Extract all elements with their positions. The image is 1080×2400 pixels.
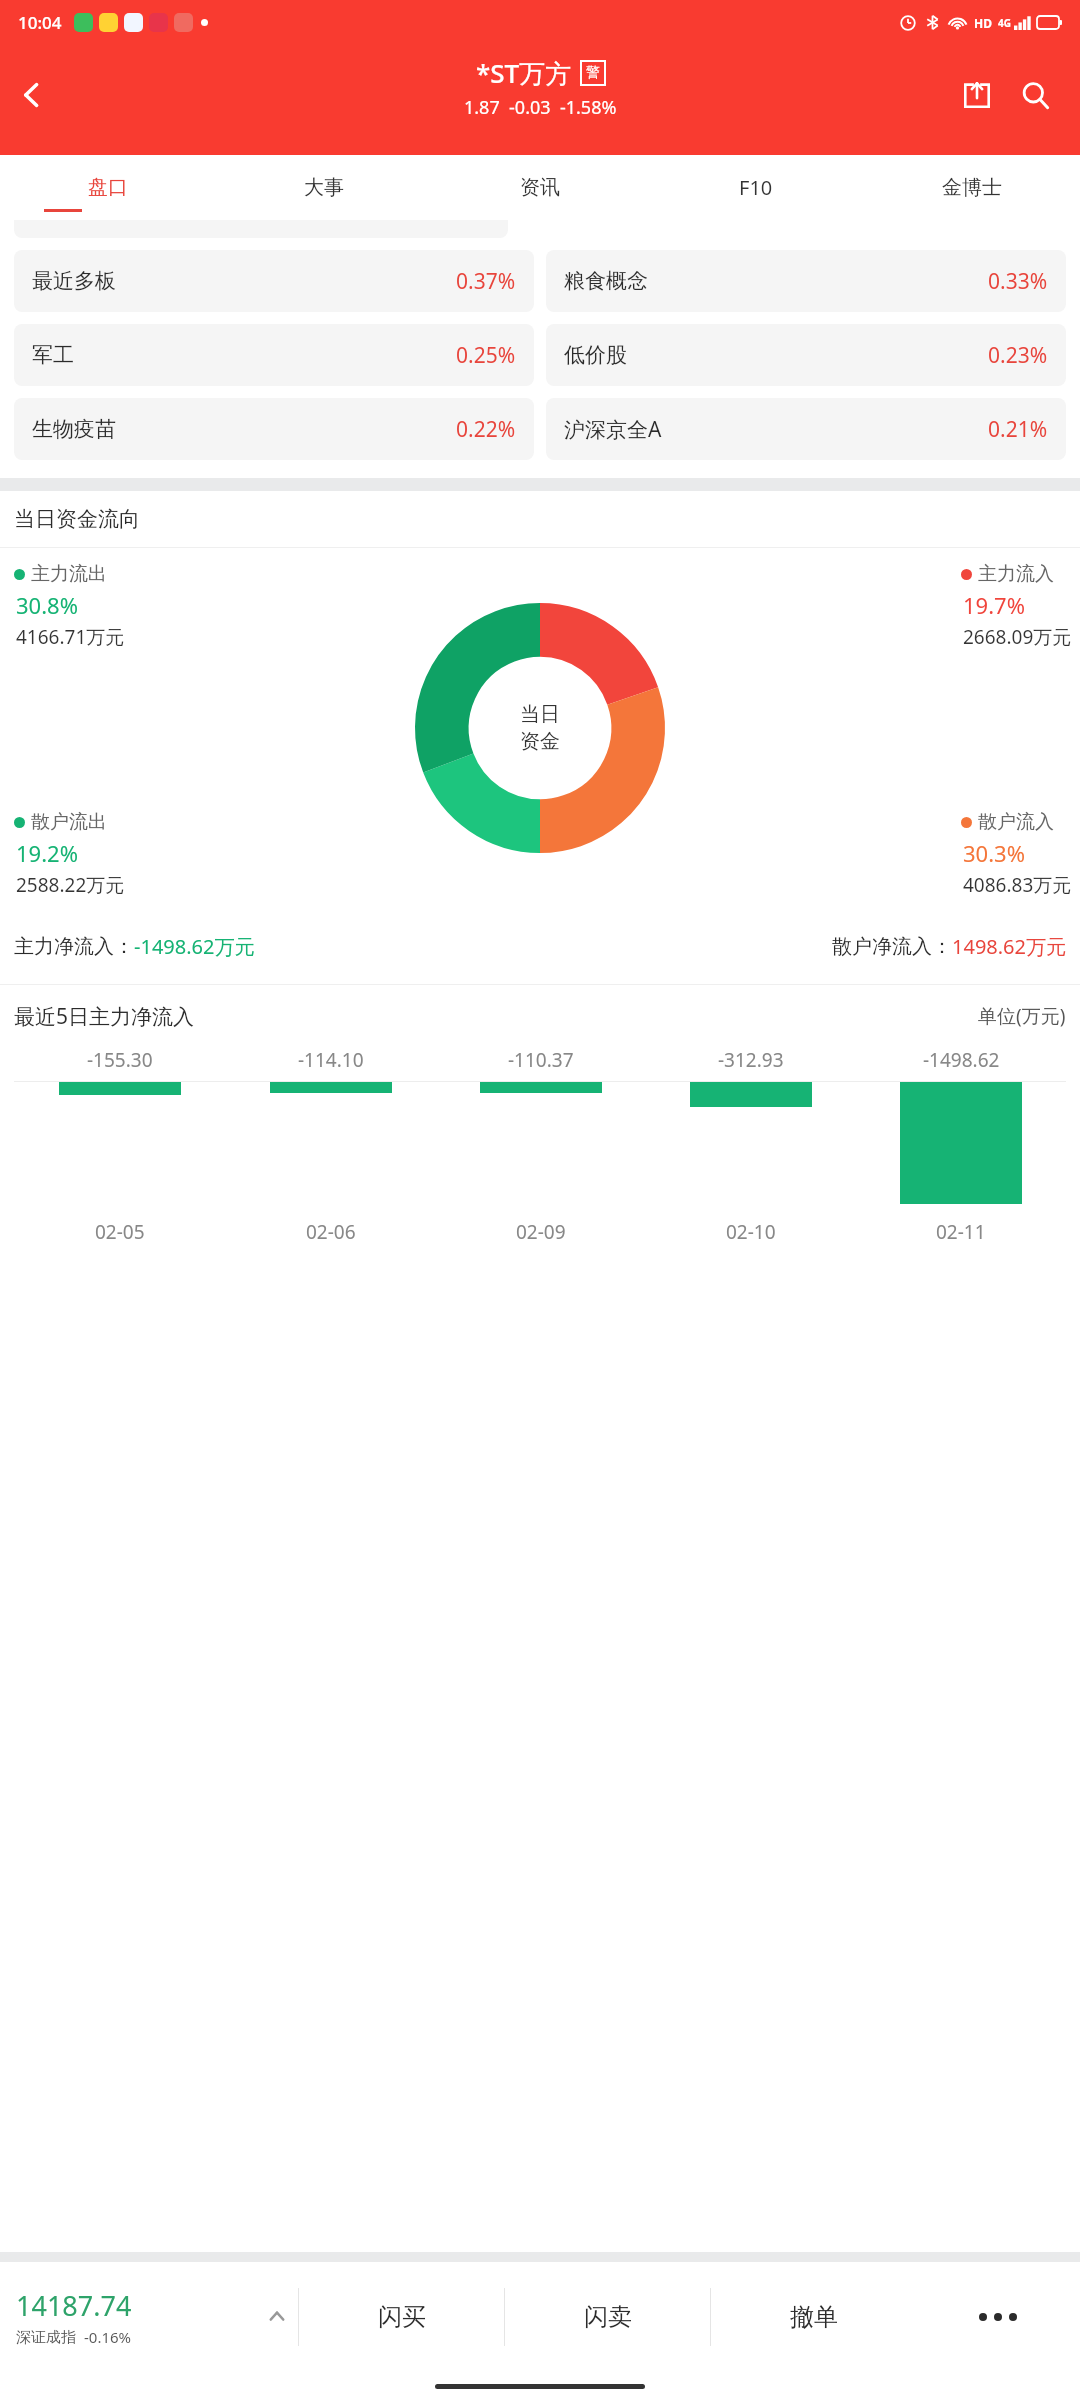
button[interactable]: 14187.74 [0, 2262, 298, 2372]
staticText: 4166.71万元 [16, 624, 125, 650]
staticText: 金博士 [942, 175, 1002, 200]
staticText: -1498.62万元 [134, 933, 255, 960]
button[interactable]: 粮食概念 [546, 250, 1066, 312]
staticText: 散户流入 [978, 810, 1054, 834]
staticText: 14187.74 [16, 2287, 132, 2324]
staticText: 盘口 [88, 175, 128, 200]
staticText: 2588.22万元 [16, 872, 125, 898]
button[interactable]: 盘口 [0, 155, 216, 220]
staticText: 单位(万元) [978, 1003, 1066, 1029]
staticText: 沪深京全A [564, 415, 662, 444]
button[interactable]: 低价股 [546, 324, 1066, 386]
button[interactable]: 最近多板 [14, 250, 534, 312]
staticText: 最近多板 [32, 268, 116, 294]
staticText: 资金 [520, 729, 560, 754]
staticText: 警 [586, 64, 600, 82]
staticText: -0.16% [84, 2327, 132, 2347]
staticText: 2668.09万元 [963, 624, 1072, 650]
staticText: 10:04 [18, 11, 62, 34]
staticText: 粮食概念 [564, 268, 648, 294]
staticText: 散户净流入： [832, 934, 952, 959]
button[interactable]: Share [948, 66, 1006, 124]
button[interactable]: 沪深京全A [546, 398, 1066, 460]
staticText: 散户流出 [31, 810, 107, 834]
staticText: 02-06 [306, 1219, 356, 1245]
button[interactable]: 大事 [216, 155, 432, 220]
staticText: 1498.62万元 [952, 933, 1066, 960]
staticText: 主力流入 [978, 562, 1054, 586]
staticText: 02-09 [516, 1219, 566, 1245]
button[interactable]: Back [0, 63, 64, 127]
button[interactable]: Search [1006, 66, 1064, 124]
staticText: -155.30 [87, 1047, 153, 1073]
staticText: 闪卖 [584, 2302, 632, 2332]
button[interactable]: F10 [648, 155, 864, 220]
staticText: 0.22% [456, 415, 516, 444]
staticText: 4G [998, 16, 1011, 30]
staticText: 撤单 [790, 2302, 838, 2332]
staticText: 02-11 [936, 1219, 986, 1245]
staticText: 军工 [32, 342, 74, 368]
staticText: 4086.83万元 [963, 872, 1072, 898]
button[interactable]: 军工 [14, 324, 534, 386]
staticText: 30.8% [16, 590, 78, 620]
button[interactable]: 撤单 [711, 2262, 916, 2372]
staticText: 1.87 -0.03 -1.58% [464, 95, 617, 120]
staticText: 深证成指 [16, 2328, 76, 2347]
staticText: 30.3% [963, 838, 1025, 868]
staticText: *ST万方 [476, 55, 572, 91]
staticText: 02-10 [726, 1219, 776, 1245]
button[interactable]: 生物疫苗 [14, 398, 534, 460]
staticText: 最近5日主力净流入 [14, 1002, 195, 1031]
button[interactable]: 闪卖 [505, 2262, 710, 2372]
staticText: 19.2% [16, 838, 78, 868]
staticText: 闪买 [378, 2302, 426, 2332]
staticText: HD [974, 15, 992, 31]
staticText: 0.33% [988, 267, 1048, 296]
button[interactable]: 资讯 [432, 155, 648, 220]
button[interactable]: More [916, 2262, 1080, 2372]
staticText: 主力净流入： [14, 934, 134, 959]
staticText: 大事 [304, 175, 344, 200]
staticText: 资讯 [520, 175, 560, 200]
staticText: 02-05 [95, 1219, 145, 1245]
staticText: 主力流出 [31, 562, 107, 586]
staticText: 0.23% [988, 341, 1048, 370]
staticText: 生物疫苗 [32, 416, 116, 442]
staticText: -1498.62 [923, 1047, 1000, 1073]
staticText: -110.37 [508, 1047, 574, 1073]
staticText: -114.10 [298, 1047, 364, 1073]
staticText: 0.37% [456, 267, 516, 296]
staticText: 当日资金流向 [14, 506, 140, 532]
staticText: 0.25% [456, 341, 516, 370]
staticText: 低价股 [564, 342, 627, 368]
staticText: 当日 [520, 702, 560, 727]
staticText: 0.21% [988, 415, 1048, 444]
button[interactable]: 金博士 [864, 155, 1080, 220]
staticText: -312.93 [718, 1047, 784, 1073]
staticText: F10 [739, 174, 773, 201]
button[interactable]: 闪买 [299, 2262, 504, 2372]
staticText: 19.7% [963, 590, 1025, 620]
